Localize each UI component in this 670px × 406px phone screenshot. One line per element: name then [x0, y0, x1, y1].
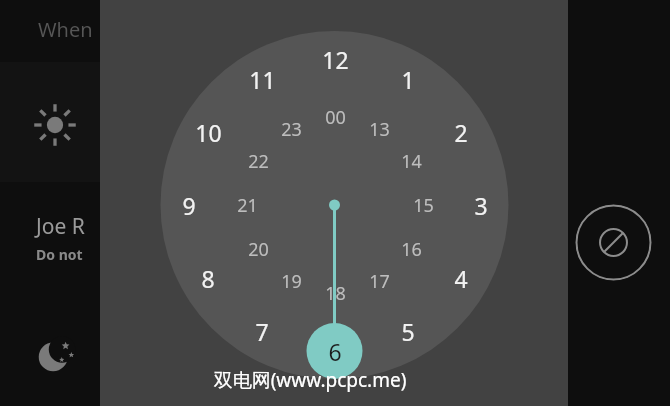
button[interactable]: 1 — [385, 62, 431, 96]
button[interactable]: 11 — [239, 62, 285, 96]
button[interactable]: 7 — [239, 314, 285, 348]
button[interactable]: 5 — [385, 314, 431, 348]
button[interactable]: 20 — [237, 235, 279, 263]
staticText: Joe R — [36, 212, 85, 241]
button[interactable]: 6 — [312, 334, 358, 368]
staticText: 1 — [401, 64, 415, 95]
button[interactable]: 22 — [237, 147, 279, 175]
staticText: Do not — [36, 245, 83, 264]
button[interactable]: 9 — [166, 188, 212, 222]
button[interactable]: 16 — [390, 235, 432, 263]
button[interactable]: Joe R — [0, 182, 100, 302]
staticText: 11 — [249, 64, 276, 95]
staticText: 6 — [328, 336, 342, 367]
staticText: When — [38, 16, 93, 43]
button[interactable]: 19 — [270, 267, 312, 295]
staticText: 14 — [401, 149, 422, 174]
button[interactable]: 17 — [358, 267, 400, 295]
button[interactable]: 23 — [270, 115, 312, 143]
staticText: 2 — [454, 117, 468, 148]
button[interactable]: 10 — [185, 115, 231, 149]
staticText: 4 — [454, 263, 468, 294]
button[interactable]: 2 — [438, 115, 484, 149]
staticText: 19 — [281, 269, 302, 294]
staticText: 18 — [325, 281, 346, 306]
button[interactable]: 00 — [314, 103, 356, 131]
button[interactable]: 14 — [390, 147, 432, 175]
button[interactable]: 18 — [314, 279, 356, 307]
staticText: 5 — [401, 316, 415, 347]
staticText: 00 — [325, 105, 346, 130]
staticText: 7 — [255, 316, 269, 347]
button[interactable]: 8 — [185, 261, 231, 295]
button[interactable]: Do not disturb — [575, 204, 652, 281]
staticText: 15 — [413, 193, 434, 218]
button[interactable]: When — [0, 0, 100, 62]
button[interactable]: Night mode — [0, 302, 100, 406]
button[interactable]: 3 — [458, 188, 504, 222]
staticText: 10 — [195, 117, 222, 148]
button[interactable]: 12 — [312, 42, 358, 76]
staticText: 23 — [281, 117, 302, 142]
staticText: 3 — [474, 190, 488, 221]
staticText: 21 — [237, 193, 258, 218]
button[interactable]: 13 — [358, 115, 400, 143]
button[interactable]: 4 — [438, 261, 484, 295]
staticText: 9 — [182, 190, 196, 221]
staticText: 17 — [369, 269, 390, 294]
button[interactable]: 15 — [402, 191, 444, 219]
staticText: 双电网(www.pcpc.me) — [186, 367, 434, 395]
staticText: 16 — [401, 237, 422, 262]
staticText: 13 — [369, 117, 390, 142]
button[interactable]: Brightness — [0, 62, 100, 182]
staticText: 22 — [248, 149, 269, 174]
staticText: 8 — [201, 263, 215, 294]
staticText: 20 — [248, 237, 269, 262]
button[interactable]: 21 — [226, 191, 268, 219]
staticText: 12 — [322, 44, 349, 75]
